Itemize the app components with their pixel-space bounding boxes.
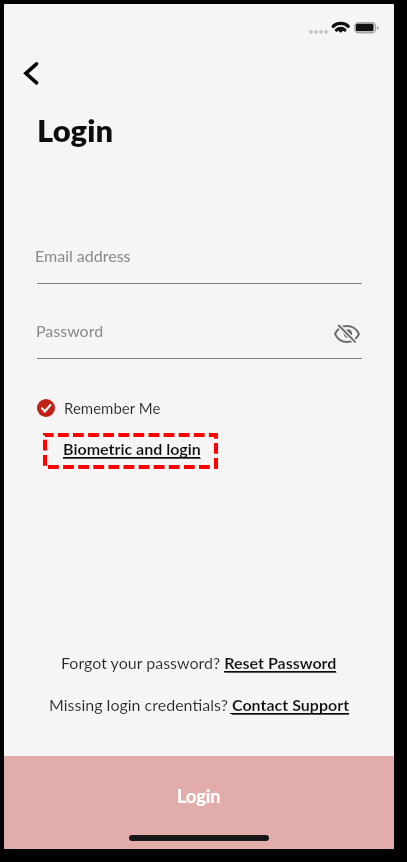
button[interactable]: Back [9, 52, 55, 98]
staticText: Email address [35, 246, 131, 265]
button[interactable]: Show password [329, 314, 365, 354]
staticText: Missing login credentials? Contact Suppo… [49, 695, 350, 714]
button[interactable]: Missing login credentials? Contact Suppo… [39, 690, 360, 719]
staticText: Remember Me [64, 399, 161, 417]
button[interactable]: Biometric and login [45, 435, 216, 467]
staticText: Password [36, 321, 104, 340]
staticText: Biometric and login [63, 439, 201, 458]
staticText: Login [37, 111, 114, 148]
button[interactable]: Remember Me [33, 394, 165, 422]
button[interactable]: Forgot your password? Reset Password [51, 648, 347, 677]
staticText: Login [177, 785, 221, 807]
button[interactable]: Login [4, 756, 394, 849]
staticText: Forgot your password? Reset Password [61, 653, 337, 672]
